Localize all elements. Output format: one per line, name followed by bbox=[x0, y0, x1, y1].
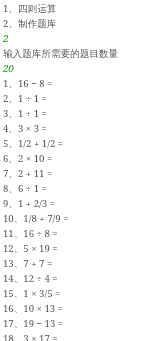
staticText: 11、16 ÷ 8 = bbox=[3, 227, 58, 240]
staticText: 16、10 × 13 = bbox=[3, 302, 63, 315]
button[interactable]: 9、1 + 2/3 = bbox=[3, 196, 140, 211]
other: Arithmetic question bank console output bbox=[0, 0, 142, 341]
staticText: 2、1 ÷ 1 = bbox=[3, 92, 47, 105]
staticText: 1、四则运算 bbox=[3, 2, 57, 15]
button[interactable]: 16、10 × 13 = bbox=[3, 301, 140, 316]
button[interactable]: 11、16 ÷ 8 = bbox=[3, 226, 140, 241]
button[interactable]: 15、1 × 3/5 = bbox=[3, 286, 140, 301]
staticText: 4、3 × 3 = bbox=[3, 122, 47, 135]
button[interactable]: 3、1 ÷ 1 = bbox=[3, 106, 140, 121]
button[interactable]: 12、5 × 19 = bbox=[3, 241, 140, 256]
button[interactable]: 输入题库所需要的题目数量 bbox=[3, 46, 140, 61]
staticText: 2、制作题库 bbox=[3, 17, 57, 30]
button[interactable]: 17、19 − 13 = bbox=[3, 316, 140, 331]
staticText: 输入题库所需要的题目数量 bbox=[3, 48, 119, 60]
staticText: 7、2 + 11 = bbox=[3, 167, 53, 180]
button[interactable]: 2、1 ÷ 1 = bbox=[3, 91, 140, 106]
staticText: 3、1 ÷ 1 = bbox=[3, 107, 47, 120]
staticText: 2 bbox=[3, 32, 9, 45]
button[interactable]: 2 bbox=[3, 31, 140, 46]
button[interactable]: 18、3 × 17 = bbox=[3, 331, 140, 341]
button[interactable]: 5、1/2 + 1/2 = bbox=[3, 136, 140, 151]
staticText: 5、1/2 + 1/2 = bbox=[3, 137, 64, 150]
staticText: 13、7 + 7 = bbox=[3, 257, 53, 270]
button[interactable]: 6、2 × 10 = bbox=[3, 151, 140, 166]
staticText: 15、1 × 3/5 = bbox=[3, 287, 61, 300]
staticText: 8、6 ÷ 1 = bbox=[3, 182, 47, 195]
button[interactable]: 7、2 + 11 = bbox=[3, 166, 140, 181]
staticText: 14、12 ÷ 4 = bbox=[3, 272, 58, 285]
button[interactable]: 8、6 ÷ 1 = bbox=[3, 181, 140, 196]
button[interactable]: 2、制作题库 bbox=[3, 16, 140, 31]
button[interactable]: 4、3 × 3 = bbox=[3, 121, 140, 136]
button[interactable]: 13、7 + 7 = bbox=[3, 256, 140, 271]
staticText: 9、1 + 2/3 = bbox=[3, 197, 56, 210]
staticText: 6、2 × 10 = bbox=[3, 152, 53, 165]
staticText: 12、5 × 19 = bbox=[3, 242, 58, 255]
staticText: 1、16 − 8 = bbox=[3, 77, 53, 90]
staticText: 20 bbox=[3, 62, 14, 75]
button[interactable]: 20 bbox=[3, 61, 140, 76]
staticText: 17、19 − 13 = bbox=[3, 317, 64, 330]
staticText: 18、3 × 17 = bbox=[3, 332, 58, 341]
button[interactable]: 10、1/8 + 7/9 = bbox=[3, 211, 140, 226]
button[interactable]: 14、12 ÷ 4 = bbox=[3, 271, 140, 286]
button[interactable]: 1、16 − 8 = bbox=[3, 76, 140, 91]
button[interactable]: 1、四则运算 bbox=[3, 1, 140, 16]
staticText: 10、1/8 + 7/9 = bbox=[3, 212, 69, 225]
